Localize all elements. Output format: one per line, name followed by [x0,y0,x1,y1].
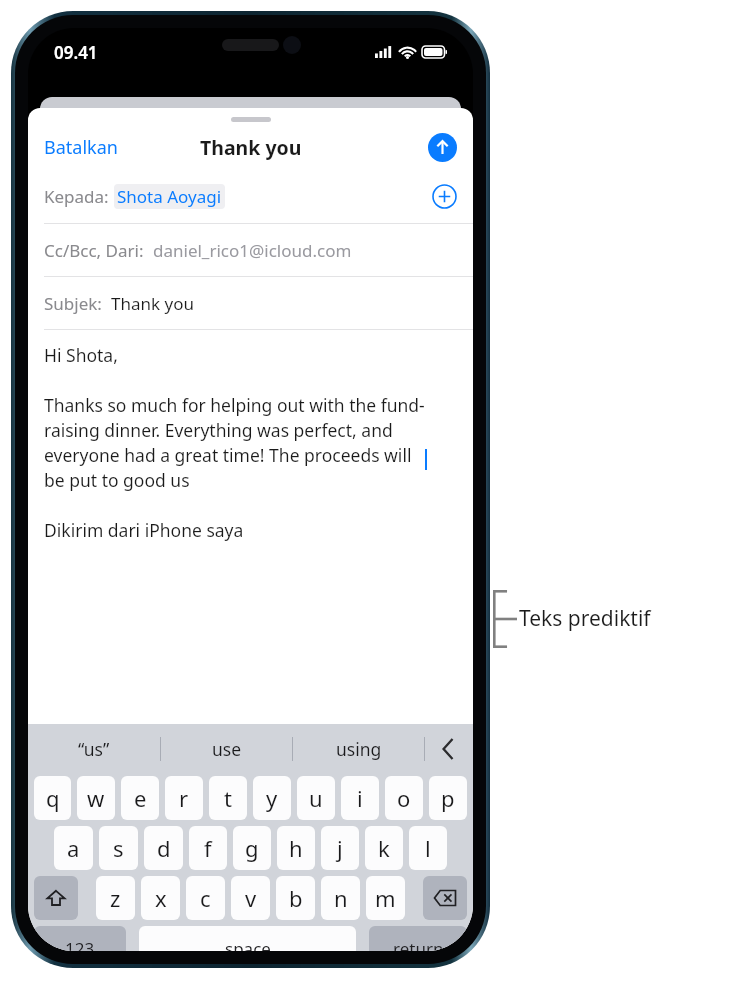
staticText: Shota Aoyagi [117,185,222,208]
staticText: g [245,833,259,863]
button[interactable]: o [385,776,423,820]
staticText: p [441,783,455,813]
staticText: z [110,883,121,913]
button[interactable]: g [233,826,271,870]
button[interactable]: i [341,776,379,820]
staticText: Thank you [200,134,302,161]
staticText: u [309,783,323,813]
button[interactable]: a [54,826,93,870]
button[interactable]: d [144,826,183,870]
button[interactable]: u [297,776,335,820]
staticText: s [113,833,124,863]
button[interactable]: Tambah kontak [432,184,457,209]
button[interactable]: using [293,724,424,773]
staticText: Thanks so much for helping out with the … [44,393,425,492]
staticText: daniel_rico1@icloud.com [153,239,352,262]
button[interactable]: e [121,776,159,820]
staticText: y [266,783,278,813]
staticText: o [397,783,411,813]
staticText: l [425,833,431,863]
staticText: Hi Shota, [44,343,118,367]
staticText: k [378,833,390,863]
staticText: h [289,833,303,863]
staticText: e [134,783,147,813]
button[interactable]: h [277,826,315,870]
button[interactable]: x [141,876,180,920]
button[interactable]: v [231,876,270,920]
staticText: q [46,783,60,813]
staticText: m [375,883,396,913]
button[interactable]: q [34,776,71,820]
button[interactable]: Shift [34,876,78,920]
staticText: c [200,883,211,913]
staticText: d [157,833,171,863]
button[interactable]: c [186,876,225,920]
staticText: Kepada: [44,185,114,208]
staticText: Cc/Bcc, Dari: [44,239,153,262]
button[interactable]: 123 [34,926,126,951]
staticText: i [357,783,363,813]
staticText: Teks prediktif [519,604,651,633]
staticText: r [179,783,189,813]
button[interactable]: j [321,826,359,870]
button[interactable]: y [253,776,291,820]
staticText: b [289,883,303,913]
staticText: x [155,883,167,913]
button[interactable]: use [161,724,292,773]
staticText: space [225,937,271,951]
staticText: a [67,833,80,863]
staticText: “us” [78,737,110,761]
button[interactable]: p [429,776,467,820]
staticText: f [204,833,212,863]
button[interactable]: k [365,826,403,870]
button[interactable]: z [96,876,135,920]
button[interactable]: Shota Aoyagi [114,184,225,209]
staticText: t [224,783,232,813]
button[interactable]: Batalkan [28,129,128,166]
button[interactable]: w [77,776,115,820]
button[interactable]: return [369,926,467,951]
button[interactable]: r [165,776,203,820]
button[interactable]: b [276,876,315,920]
button[interactable]: Kirim [428,133,457,162]
button[interactable]: Hapus [423,876,467,920]
staticText: v [245,883,257,913]
button[interactable]: l [409,826,447,870]
staticText: w [87,783,105,813]
button[interactable]: space [139,926,356,951]
staticText: return [393,937,444,951]
button[interactable]: f [189,826,227,870]
staticText: use [212,737,242,761]
button[interactable]: m [366,876,405,920]
staticText: Thank you [111,292,194,315]
staticText: 09.41 [54,41,98,64]
button[interactable]: n [321,876,360,920]
staticText: j [337,833,343,863]
staticText: n [334,883,348,913]
button[interactable]: s [99,826,138,870]
staticText: Subjek: [44,292,111,315]
staticText: 123 [65,937,95,951]
staticText: Batalkan [44,135,118,160]
button[interactable]: Sembunyikan prediksi [425,724,473,773]
staticText: Dikirim dari iPhone saya [44,518,244,542]
button[interactable]: “us” [28,724,160,773]
staticText: using [336,737,382,761]
button[interactable]: t [209,776,247,820]
